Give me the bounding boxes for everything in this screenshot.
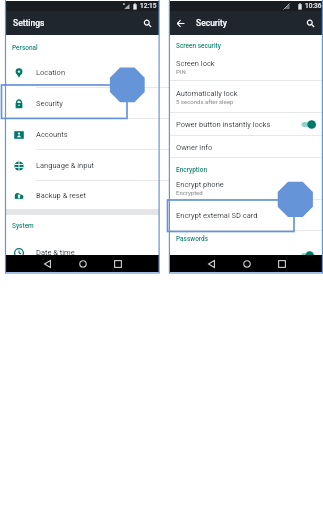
button[interactable]: Automatically lock [170, 81, 322, 113]
button[interactable]: Navigate up [170, 13, 190, 33]
button[interactable]: Screen lock [170, 52, 322, 81]
button[interactable]: Search [137, 13, 157, 33]
staticText: System [12, 222, 34, 230]
staticText: Encrypted [176, 189, 203, 196]
staticText: Power button instantly locks [176, 120, 271, 129]
staticText: Encrypt phone [176, 180, 224, 189]
staticText: 12:15 [140, 2, 157, 10]
button[interactable]: Recent apps [100, 255, 135, 272]
button[interactable]: Encrypt phone [170, 176, 322, 200]
button[interactable]: Recent apps [264, 255, 299, 272]
staticText: Settings [13, 18, 45, 28]
staticText: Date & time [36, 248, 75, 257]
button[interactable]: Home [65, 255, 100, 272]
staticText: 5 seconds after sleep [176, 98, 234, 105]
button[interactable]: Accounts [6, 119, 159, 150]
staticText: Automatically lock [176, 89, 238, 98]
button[interactable]: Back [30, 255, 65, 272]
button[interactable]: Home [229, 255, 264, 272]
staticText: Passwords [176, 235, 209, 243]
button[interactable]: Location [6, 57, 159, 88]
staticText: PIN [176, 68, 186, 75]
staticText: Language & input [36, 161, 95, 170]
staticText: Personal [12, 44, 38, 52]
staticText: Location [36, 68, 66, 77]
button[interactable]: Encrypt external SD card [170, 200, 322, 231]
button[interactable]: Back [194, 255, 229, 272]
staticText: Security [196, 18, 228, 28]
staticText: Backup & reset [36, 191, 86, 200]
staticText: 10:36 [305, 2, 322, 10]
button[interactable]: Security [6, 88, 159, 119]
button[interactable]: Owner info [170, 136, 322, 158]
staticText: Screen security [176, 42, 221, 50]
staticText: Screen lock [176, 59, 215, 68]
staticText: Encrypt external SD card [176, 211, 258, 220]
button[interactable]: Date & time [6, 237, 159, 268]
staticText: Owner info [176, 143, 213, 152]
staticText: Accounts [36, 130, 68, 139]
button[interactable]: Search [300, 13, 320, 33]
button[interactable]: Language & input [6, 150, 159, 181]
staticText: Encryption [176, 166, 208, 174]
button[interactable]: Power button instantly locks [170, 112, 322, 136]
button[interactable]: Backup & reset [6, 181, 159, 210]
staticText: Security [36, 99, 63, 108]
